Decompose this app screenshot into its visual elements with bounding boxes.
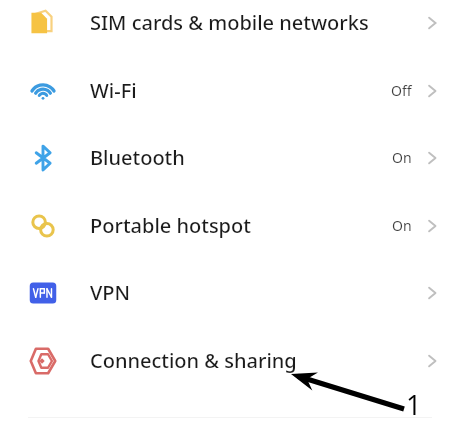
button[interactable]: Bluetooth xyxy=(0,124,460,191)
button[interactable]: SIM cards & mobile networks xyxy=(0,0,460,56)
staticText: Bluetooth xyxy=(90,144,185,171)
staticText: SIM cards & mobile networks xyxy=(90,9,369,36)
staticText: Wi-Fi xyxy=(90,77,137,104)
staticText: Off xyxy=(391,81,412,100)
staticText: On xyxy=(392,148,412,167)
staticText: 1 xyxy=(406,386,422,423)
staticText: On xyxy=(392,216,412,235)
button[interactable]: Portable hotspot xyxy=(0,192,460,259)
staticText: Connection & sharing xyxy=(90,347,297,374)
button[interactable]: Wi-Fi xyxy=(0,57,460,124)
button[interactable]: VPN xyxy=(0,259,460,326)
staticText: Portable hotspot xyxy=(90,212,251,239)
staticText: VPN xyxy=(90,279,131,306)
button[interactable]: Connection & sharing xyxy=(0,327,460,394)
